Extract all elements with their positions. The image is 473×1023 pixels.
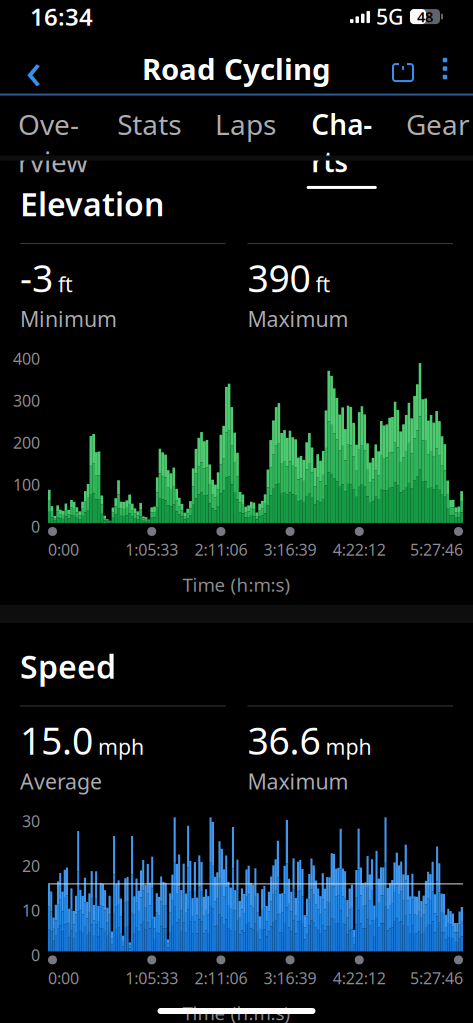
- staticText: 10: [22, 900, 40, 921]
- staticText: Elevation: [20, 183, 164, 225]
- staticText: 0: [31, 944, 40, 966]
- staticText: 4:22:12: [333, 967, 386, 989]
- staticText: Charts: [311, 106, 372, 180]
- staticText: 5:27:46: [410, 539, 463, 560]
- staticText: Time (h:m:s): [182, 572, 290, 597]
- staticText: mph: [325, 732, 371, 761]
- staticText: Time (h:m:s): [182, 1001, 290, 1023]
- staticText: Minimum: [20, 305, 117, 333]
- staticText: -3: [20, 253, 53, 303]
- staticText: 20: [22, 855, 40, 876]
- staticText: Maximum: [247, 767, 348, 795]
- staticText: 4:22:12: [333, 539, 386, 560]
- button[interactable]: Charts: [307, 106, 377, 156]
- staticText: Speed: [20, 645, 116, 687]
- staticText: 390: [247, 253, 310, 303]
- staticText: ft: [315, 270, 330, 298]
- button[interactable]: Overview: [18, 106, 88, 156]
- staticText: 2:11:06: [194, 539, 247, 560]
- staticText: 48: [417, 7, 433, 26]
- staticText: 0: [31, 516, 40, 537]
- staticText: 5:27:46: [410, 967, 463, 989]
- staticText: 100: [13, 474, 40, 495]
- staticText: 0:00: [48, 539, 79, 560]
- button[interactable]: Gear: [403, 106, 473, 156]
- staticText: mph: [98, 732, 144, 761]
- staticText: 300: [13, 390, 40, 411]
- staticText: 16:34: [30, 1, 93, 32]
- staticText: 30: [22, 810, 40, 832]
- staticText: Overview: [18, 106, 88, 180]
- staticText: Maximum: [247, 305, 348, 333]
- staticText: 5G: [376, 2, 404, 31]
- button[interactable]: Laps: [210, 106, 281, 156]
- staticText: Laps: [215, 106, 276, 143]
- staticText: 200: [13, 432, 40, 453]
- staticText: 3:16:39: [264, 967, 317, 989]
- button[interactable]: Share: [381, 47, 425, 91]
- staticText: 1:05:33: [125, 539, 178, 560]
- staticText: 15.0: [20, 715, 93, 765]
- staticText: ft: [58, 270, 73, 298]
- staticText: 3:16:39: [264, 539, 317, 560]
- staticText: 2:11:06: [194, 967, 247, 989]
- staticText: Road Cycling: [142, 49, 331, 88]
- button[interactable]: Back: [8, 47, 60, 91]
- staticText: Average: [20, 767, 102, 795]
- button[interactable]: More options: [425, 47, 465, 91]
- staticText: 1:05:33: [125, 967, 178, 989]
- staticText: 0:00: [48, 967, 79, 989]
- staticText: ▲: [398, 52, 407, 66]
- staticText: 400: [13, 348, 40, 369]
- button[interactable]: Stats: [114, 106, 184, 156]
- staticText: Stats: [117, 106, 181, 143]
- staticText: ‹: [25, 33, 42, 104]
- staticText: 36.6: [247, 715, 320, 765]
- staticText: Gear: [406, 106, 470, 143]
